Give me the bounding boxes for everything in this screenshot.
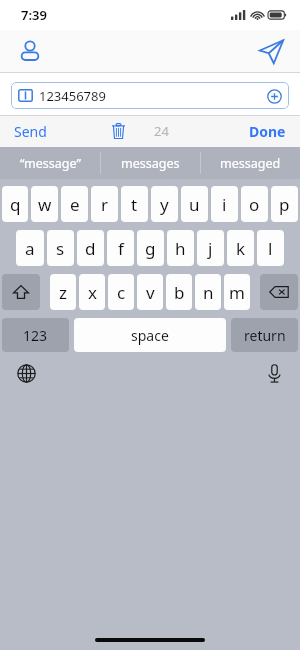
- staticText: c: [117, 281, 126, 304]
- button[interactable]: m: [224, 274, 250, 310]
- button[interactable]: i: [211, 186, 238, 222]
- staticText: v: [146, 281, 155, 304]
- button[interactable]: d: [77, 230, 104, 266]
- button[interactable]: h: [167, 230, 194, 266]
- button[interactable]: j: [197, 230, 224, 266]
- staticText: r: [101, 193, 109, 216]
- staticText: 123456789: [39, 87, 106, 105]
- button[interactable]: return: [231, 318, 298, 352]
- staticText: 123: [23, 326, 48, 345]
- staticText: a: [25, 237, 35, 260]
- button[interactable]: v: [137, 274, 163, 310]
- staticText: x: [88, 281, 97, 304]
- staticText: j: [208, 237, 213, 260]
- staticText: y: [160, 193, 169, 216]
- staticText: n: [203, 281, 214, 304]
- button[interactable]: Send: [6, 116, 55, 147]
- staticText: w: [38, 193, 52, 216]
- button[interactable]: Add recipient: [265, 87, 283, 105]
- button[interactable]: “message”: [0, 147, 100, 179]
- button[interactable]: Change keyboard: [11, 358, 41, 388]
- staticText: t: [131, 193, 138, 216]
- button[interactable]: x: [79, 274, 105, 310]
- button[interactable]: o: [241, 186, 268, 222]
- staticText: messages: [121, 155, 180, 172]
- button[interactable]: f: [107, 230, 134, 266]
- button[interactable]: p: [271, 186, 298, 222]
- button[interactable]: w: [31, 186, 58, 222]
- staticText: messaged: [220, 155, 281, 172]
- staticText: m: [229, 281, 245, 304]
- button[interactable]: k: [227, 230, 254, 266]
- button[interactable]: c: [108, 274, 134, 310]
- button[interactable]: 123456789: [11, 82, 289, 109]
- staticText: 24: [154, 122, 169, 140]
- button[interactable]: z: [50, 274, 76, 310]
- button[interactable]: a: [16, 230, 44, 266]
- button[interactable]: Done: [241, 116, 294, 147]
- button[interactable]: t: [121, 186, 148, 222]
- button[interactable]: y: [151, 186, 178, 222]
- button[interactable]: u: [181, 186, 208, 222]
- staticText: z: [59, 281, 67, 304]
- staticText: k: [236, 237, 246, 260]
- staticText: “message”: [20, 155, 81, 172]
- button[interactable]: 123: [2, 318, 69, 352]
- staticText: e: [70, 193, 80, 216]
- staticText: q: [10, 193, 21, 216]
- button[interactable]: e: [61, 186, 88, 222]
- staticText: o: [249, 193, 260, 216]
- button[interactable]: space: [74, 318, 226, 352]
- button[interactable]: g: [137, 230, 164, 266]
- button[interactable]: n: [195, 274, 221, 310]
- staticText: return: [244, 326, 286, 345]
- staticText: p: [279, 193, 290, 216]
- staticText: h: [175, 237, 186, 260]
- button[interactable]: messaged: [201, 147, 300, 179]
- button[interactable]: messages: [101, 147, 200, 179]
- staticText: s: [56, 237, 65, 260]
- button[interactable]: s: [47, 230, 74, 266]
- button[interactable]: Dictate: [259, 358, 289, 388]
- staticText: u: [189, 193, 200, 216]
- button[interactable]: Send message: [251, 31, 291, 71]
- button[interactable]: Shift: [2, 274, 40, 310]
- staticText: i: [222, 193, 227, 216]
- button[interactable]: q: [2, 186, 28, 222]
- button[interactable]: Backspace: [260, 274, 298, 310]
- staticText: 7:39: [21, 6, 47, 24]
- staticText: l: [268, 237, 273, 260]
- button[interactable]: r: [91, 186, 118, 222]
- button[interactable]: l: [257, 230, 284, 266]
- button[interactable]: b: [166, 274, 192, 310]
- staticText: g: [145, 237, 156, 260]
- staticText: d: [85, 237, 96, 260]
- staticText: f: [118, 237, 124, 260]
- button[interactable]: Delete draft: [104, 117, 132, 145]
- staticText: b: [174, 281, 185, 304]
- button[interactable]: Contacts: [11, 32, 49, 70]
- staticText: space: [131, 326, 169, 345]
